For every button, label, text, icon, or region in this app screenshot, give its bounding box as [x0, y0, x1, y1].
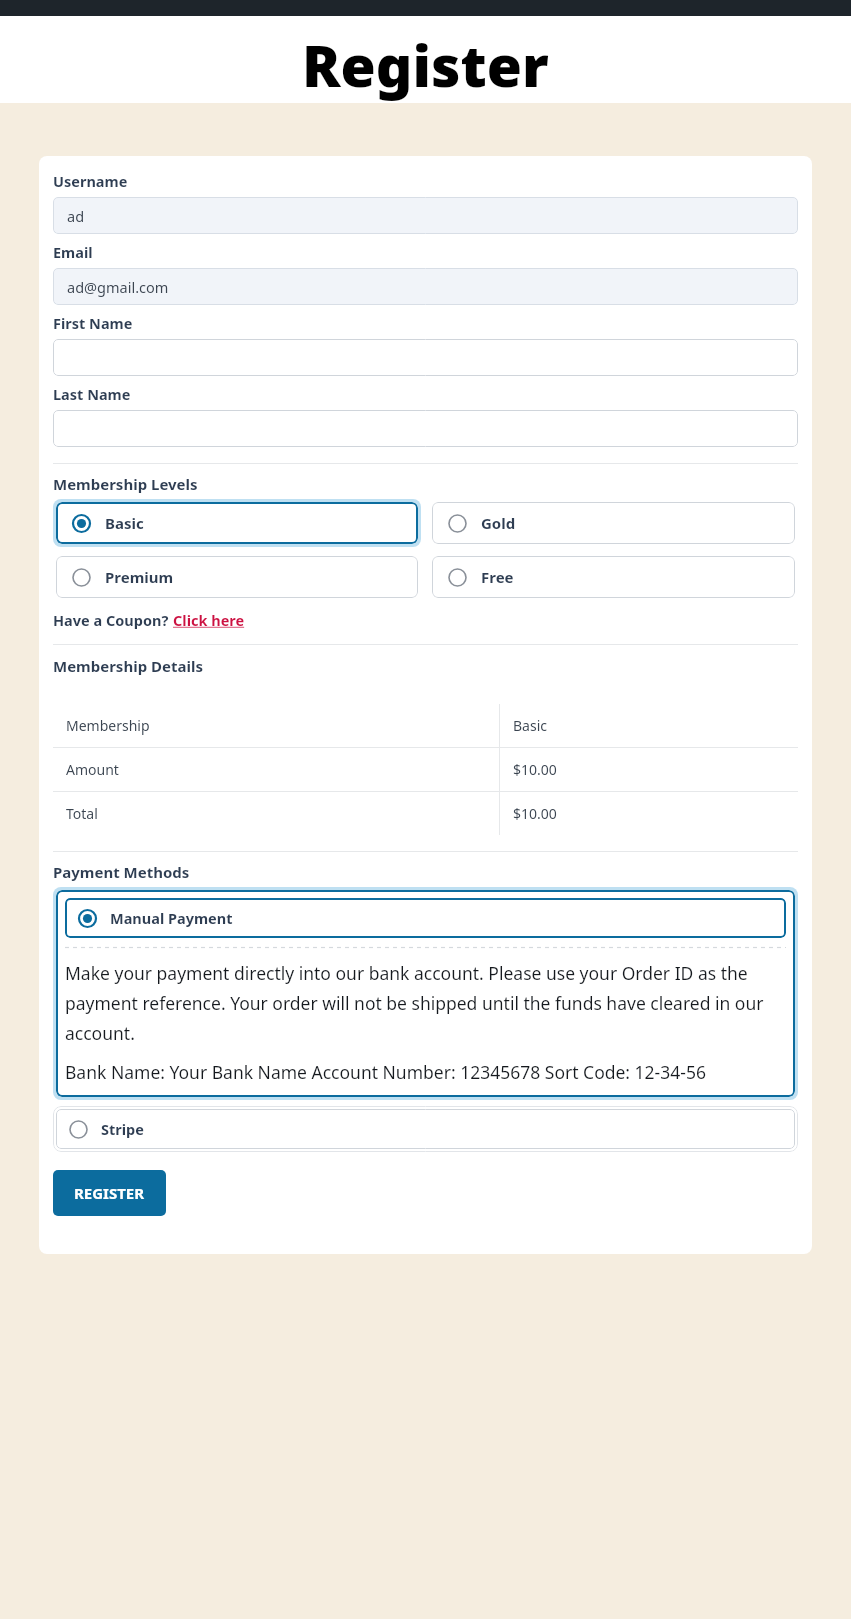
staticText: Register — [302, 26, 549, 103]
staticText: Bank Name: Your Bank Name Account Number… — [65, 1060, 706, 1084]
staticText: ad@gmail.com — [67, 277, 169, 297]
button[interactable]: ad@gmail.com — [53, 268, 798, 305]
staticText: First Name — [53, 313, 133, 333]
button[interactable] — [53, 410, 798, 447]
button[interactable]: Gold — [432, 502, 795, 544]
button[interactable]: Basic — [56, 502, 418, 544]
staticText: $10.00 — [513, 760, 557, 779]
staticText: Free — [481, 567, 514, 587]
staticText: Membership — [66, 716, 150, 735]
staticText: Email — [53, 242, 93, 262]
staticText: Last Name — [53, 384, 131, 404]
staticText: Username — [53, 171, 128, 191]
button[interactable]: REGISTER — [53, 1170, 166, 1216]
button[interactable]: Manual Payment — [65, 898, 786, 938]
staticText: Basic — [105, 513, 144, 533]
staticText: Manual Payment — [110, 908, 233, 928]
staticText: Premium — [105, 567, 174, 587]
button[interactable]: Click here — [173, 610, 245, 630]
button[interactable]: Stripe — [56, 1109, 795, 1149]
staticText: Amount — [66, 760, 119, 779]
staticText: Have a Coupon? — [53, 610, 173, 630]
staticText: $10.00 — [513, 804, 557, 823]
staticText: Make your payment directly into our bank… — [65, 961, 786, 1045]
button[interactable]: Free — [432, 556, 795, 598]
staticText: ad — [67, 206, 85, 226]
staticText: Basic — [513, 716, 547, 735]
staticText: Payment Methods — [53, 862, 190, 882]
staticText: REGISTER — [74, 1183, 145, 1203]
button[interactable]: ad — [53, 197, 798, 234]
staticText: Gold — [481, 513, 516, 533]
staticText: Membership Details — [53, 656, 203, 676]
button[interactable] — [53, 339, 798, 376]
staticText: Total — [66, 804, 98, 823]
staticText: Membership Levels — [53, 474, 198, 494]
button[interactable]: Premium — [56, 556, 418, 598]
staticText: Stripe — [101, 1119, 144, 1139]
staticText: Click here — [173, 610, 245, 630]
